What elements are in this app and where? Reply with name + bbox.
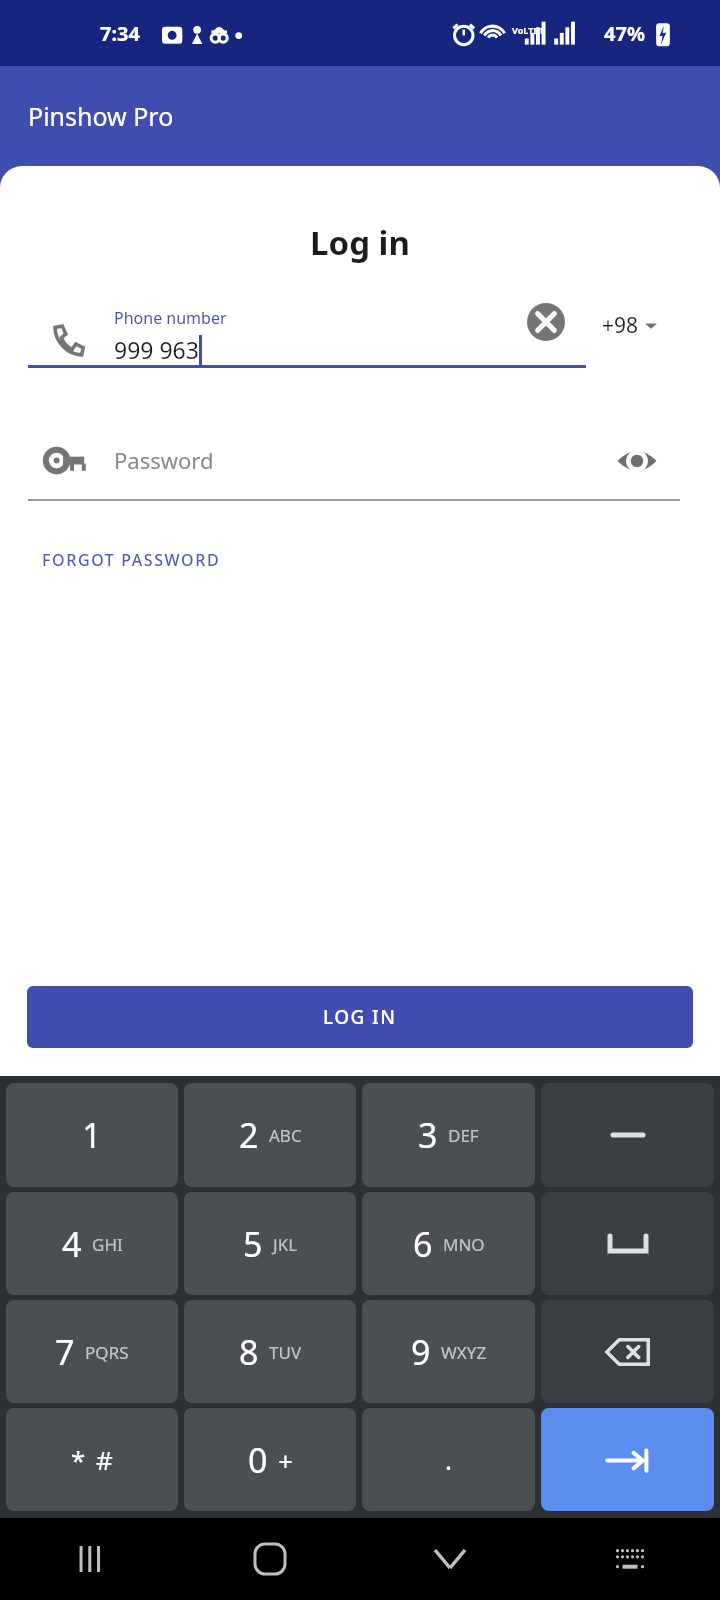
staticText: # — [96, 1442, 113, 1477]
staticText: FORGOT PASSWORD — [42, 549, 221, 571]
staticText: Log in — [0, 220, 720, 265]
button[interactable]: 6 — [362, 1192, 535, 1295]
staticText: Password — [114, 445, 214, 475]
button[interactable]: FORGOT PASSWORD — [0, 543, 263, 577]
staticText: WXYZ — [441, 1341, 487, 1364]
button[interactable]: Hide keyboard — [360, 1518, 540, 1600]
button[interactable]: 3 — [362, 1083, 535, 1187]
staticText: 7:34 — [100, 20, 140, 47]
staticText: 6 — [413, 1221, 433, 1267]
button[interactable]: Enter — [541, 1408, 714, 1511]
staticText: 7 — [55, 1329, 75, 1375]
staticText: 2 — [239, 1112, 259, 1158]
staticText: 9 — [411, 1329, 431, 1375]
button[interactable]: Home — [180, 1518, 360, 1600]
button[interactable]: Space — [541, 1192, 714, 1295]
button[interactable]: Show password — [610, 441, 664, 481]
button[interactable]: Backspace — [541, 1300, 714, 1403]
staticText: JKL — [273, 1233, 298, 1256]
button[interactable]: 2 — [184, 1083, 356, 1187]
button[interactable]: 9 — [362, 1300, 535, 1403]
button[interactable]: 1 — [6, 1083, 178, 1187]
other: Phone — [50, 321, 86, 357]
button[interactable]: +98 — [598, 307, 661, 344]
staticText: Pinshow Pro — [28, 99, 174, 133]
staticText: * — [71, 1442, 86, 1477]
button[interactable]: * — [6, 1408, 178, 1511]
staticText: 4 — [62, 1221, 82, 1267]
staticText: 3 — [418, 1112, 438, 1158]
staticText: 0 — [248, 1437, 268, 1483]
staticText: VoLTE1 — [512, 24, 544, 36]
button[interactable]: Dash — [541, 1083, 714, 1187]
button[interactable]: 8 — [184, 1300, 356, 1403]
staticText: 999 963 — [114, 334, 199, 365]
button[interactable]: 7 — [6, 1300, 178, 1403]
staticText: 47% — [604, 20, 645, 47]
staticText: DEF — [448, 1124, 479, 1147]
button[interactable]: 4 — [6, 1192, 178, 1295]
staticText: 5 — [243, 1221, 263, 1267]
button[interactable]: . — [362, 1408, 535, 1511]
staticText: . — [445, 1442, 452, 1477]
staticText: GHI — [92, 1233, 123, 1256]
staticText: MNO — [443, 1233, 485, 1256]
button[interactable]: Recents — [0, 1518, 180, 1600]
staticText: LOG IN — [323, 1004, 397, 1030]
staticText: PQRS — [85, 1341, 129, 1364]
staticText: 1 — [82, 1112, 102, 1158]
button[interactable]: Change keyboard — [540, 1518, 720, 1600]
staticText: 8 — [239, 1329, 259, 1375]
button[interactable]: Clear phone number — [527, 303, 565, 341]
staticText: Phone number — [114, 307, 227, 329]
staticText: +98 — [602, 311, 639, 340]
other: Password — [44, 445, 88, 475]
staticText: ABC — [269, 1124, 302, 1147]
button[interactable]: LOG IN — [27, 986, 693, 1048]
button[interactable]: 5 — [184, 1192, 356, 1295]
staticText: TUV — [269, 1341, 302, 1364]
button[interactable]: 0 — [184, 1408, 356, 1511]
staticText: + — [278, 1443, 293, 1478]
